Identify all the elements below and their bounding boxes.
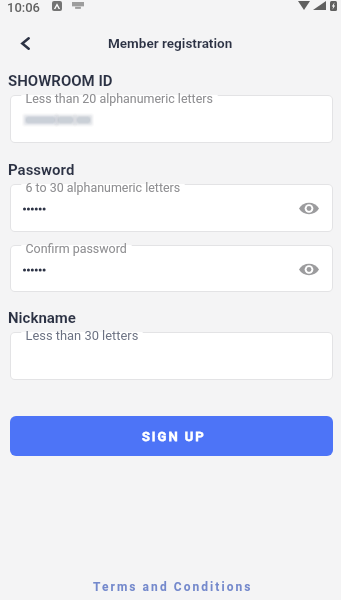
staticText: Nickname [8, 309, 76, 327]
button[interactable]: Show password [294, 254, 324, 284]
button[interactable]: Terms and Conditions [87, 578, 259, 596]
staticText: Terms and Conditions [93, 580, 253, 594]
staticText: SHOWROOM ID [8, 72, 113, 90]
button[interactable]: Show password [294, 193, 324, 223]
staticText: SIGN UP [142, 429, 206, 444]
staticText: Member registration [108, 35, 233, 51]
staticText: Password [8, 161, 75, 179]
staticText: 10:06 [7, 0, 41, 15]
button[interactable]: SIGN UP [10, 416, 333, 456]
button[interactable]: Back [9, 27, 41, 59]
